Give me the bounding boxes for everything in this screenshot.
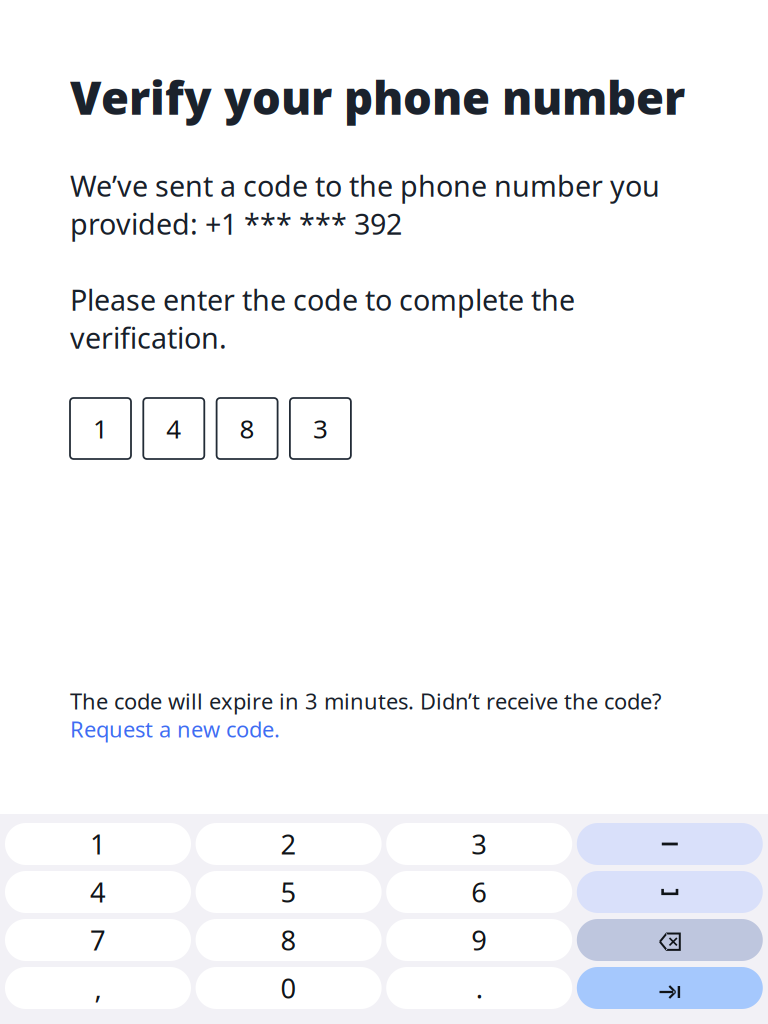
staticText: ,: [94, 969, 101, 1007]
staticText: 8: [240, 411, 255, 446]
button[interactable]: Request a new code.: [70, 714, 280, 744]
button[interactable]: 9: [386, 919, 572, 961]
staticText: 1: [90, 825, 106, 863]
button[interactable]: 1: [70, 398, 131, 459]
button[interactable]: 8: [217, 398, 278, 459]
button[interactable]: 5: [196, 871, 382, 913]
staticText: 5: [281, 873, 297, 911]
button[interactable]: Delete: [577, 919, 763, 961]
button[interactable]: 0: [196, 967, 382, 1009]
staticText: 2: [281, 825, 297, 863]
button[interactable]: 4: [5, 871, 191, 913]
staticText: 3: [471, 825, 487, 863]
staticText: 0: [281, 969, 297, 1007]
staticText: 4: [166, 411, 181, 446]
staticText: 9: [471, 921, 487, 959]
staticText: 7: [90, 921, 106, 959]
button[interactable]: Hyphen: [577, 823, 763, 865]
staticText: verification.: [70, 318, 227, 357]
staticText: 3: [313, 411, 328, 446]
button[interactable]: 6: [386, 871, 572, 913]
button[interactable]: 2: [196, 823, 382, 865]
staticText: We’ve sent a code to the phone number yo…: [70, 166, 660, 205]
button[interactable]: 8: [196, 919, 382, 961]
button[interactable]: 4: [143, 398, 204, 459]
staticText: 4: [90, 873, 106, 911]
button[interactable]: .: [386, 967, 572, 1009]
staticText: Verify your phone number: [70, 67, 685, 127]
button[interactable]: Space: [577, 871, 763, 913]
staticText: Request a new code.: [70, 714, 280, 744]
staticText: provided: +1 *** *** 392: [70, 204, 402, 243]
button[interactable]: 3: [386, 823, 572, 865]
button[interactable]: Next: [577, 967, 763, 1009]
staticText: 6: [471, 873, 487, 911]
staticText: Please enter the code to complete the: [70, 280, 575, 319]
button[interactable]: 7: [5, 919, 191, 961]
button[interactable]: ,: [5, 967, 191, 1009]
button[interactable]: 3: [290, 398, 351, 459]
button[interactable]: 1: [5, 823, 191, 865]
staticText: 8: [281, 921, 297, 959]
staticText: The code will expire in 3 minutes. Didn’…: [70, 686, 661, 716]
staticText: .: [476, 969, 483, 1007]
staticText: 1: [93, 411, 108, 446]
